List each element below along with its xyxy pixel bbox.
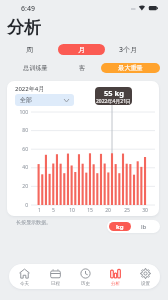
button[interactable]: 今天	[9, 264, 40, 289]
staticText: 全部	[20, 96, 32, 104]
staticText: 30	[142, 207, 148, 214]
staticText: 2022年4月	[15, 85, 45, 93]
staticText: 1	[38, 207, 41, 214]
staticText: 100	[19, 109, 28, 116]
staticText: 0	[25, 202, 28, 209]
staticText: 40	[22, 164, 28, 171]
staticText: lb	[141, 223, 147, 231]
button[interactable]: 总训练量	[20, 62, 51, 73]
staticText: 总训练量	[23, 64, 48, 72]
staticText: 25	[124, 207, 130, 214]
staticText: kg	[116, 223, 124, 231]
button[interactable]: lb	[131, 221, 156, 232]
staticText: 月	[78, 45, 85, 54]
button[interactable]: 历史	[70, 264, 100, 289]
staticText: 历史	[81, 281, 90, 287]
button[interactable]: 周	[17, 44, 41, 55]
button[interactable]: 最大重量	[101, 63, 160, 73]
staticText: 5	[52, 207, 55, 214]
staticText: 长按显示数据。	[16, 219, 51, 225]
staticText: 55 kg	[104, 88, 124, 98]
staticText: 20	[105, 207, 111, 214]
button[interactable]: 日程	[40, 264, 70, 289]
staticText: 周	[26, 45, 33, 54]
staticText: 60	[22, 146, 28, 153]
staticText: 6:49	[21, 4, 35, 14]
staticText: 客	[79, 64, 86, 72]
staticText: 最大重量	[118, 64, 143, 72]
staticText: 分析	[7, 17, 41, 38]
button[interactable]: 月	[58, 44, 105, 55]
button[interactable]: 3个月	[112, 44, 144, 55]
staticText: 20	[22, 183, 28, 190]
staticText: 15	[87, 207, 93, 214]
button[interactable]: 客	[72, 62, 92, 73]
staticText: 分析	[111, 281, 120, 287]
button[interactable]: 设置	[130, 264, 160, 289]
staticText: 日程	[51, 281, 60, 287]
staticText: 3个月	[119, 45, 138, 55]
button[interactable]: 全部	[15, 94, 74, 106]
staticText: 今天	[20, 281, 29, 287]
button[interactable]: kg	[109, 222, 131, 231]
staticText: 2022年4月21日	[96, 98, 132, 105]
staticText: 设置	[141, 281, 150, 287]
staticText: 10	[69, 207, 75, 214]
staticText: 80	[22, 127, 28, 134]
button[interactable]: 分析	[100, 264, 130, 289]
